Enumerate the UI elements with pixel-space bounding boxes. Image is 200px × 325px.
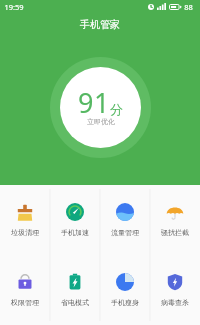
button[interactable]: 权限管理 [0,255,50,325]
staticText: 88 [184,2,193,12]
button[interactable]: 手机加速 [50,185,100,255]
staticText: 立即优化 [87,117,115,126]
staticText: 手机加速 [61,228,89,237]
button[interactable]: 骚扰拦截 [150,185,200,255]
button[interactable]: 省电模式 [50,255,100,325]
button[interactable]: 流量管理 [100,185,150,255]
staticText: 流量管理 [111,228,139,237]
button[interactable]: 病毒查杀 [150,255,200,325]
staticText: 垃圾清理 [11,228,39,237]
staticText: 省电模式 [61,298,89,307]
staticText: 手机管家 [80,18,120,31]
button[interactable]: 垃圾清理 [0,185,50,255]
staticText: 分 [110,101,123,117]
staticText: 病毒查杀 [161,298,189,307]
staticText: 手机瘦身 [111,298,139,307]
button[interactable]: 手机瘦身 [100,255,150,325]
staticText: 19:59 [4,2,24,12]
button[interactable]: 91 [60,67,141,148]
staticText: 权限管理 [11,298,39,307]
staticText: 91 [78,84,110,121]
staticText: 骚扰拦截 [161,228,189,237]
